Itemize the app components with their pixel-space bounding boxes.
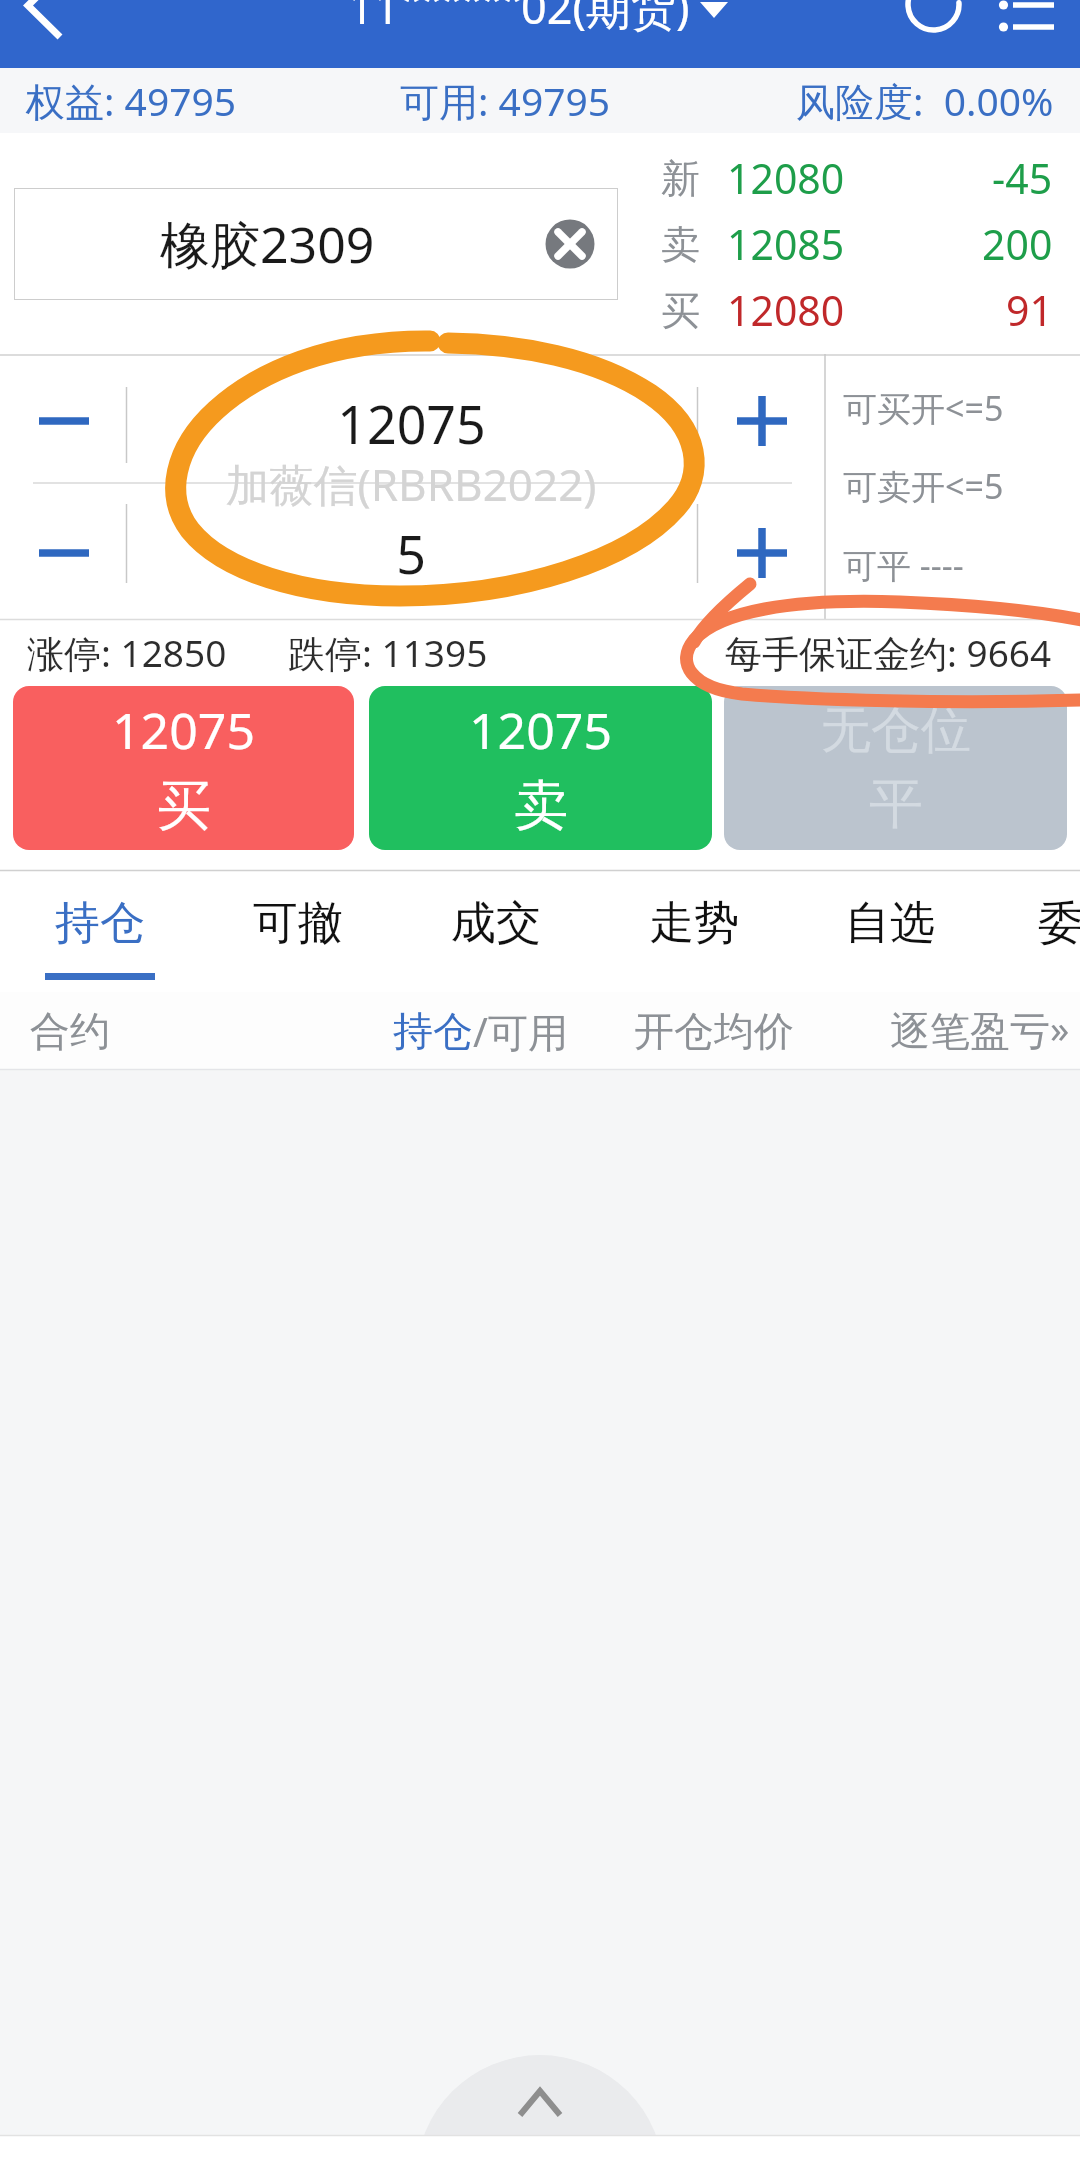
staticText: 12080 (727, 282, 845, 338)
staticText: 11 (348, 0, 400, 37)
staticText: 权益: 49795 (26, 74, 237, 127)
button[interactable]: Increase price (737, 396, 787, 446)
staticText: 橡胶2309 (160, 210, 375, 278)
staticText: 02(期货) (521, 0, 690, 37)
button[interactable]: 12075 (145, 367, 677, 479)
staticText: » (1050, 1002, 1070, 1054)
staticText: 可撤 (253, 895, 343, 952)
staticText: 可平 ---- (843, 542, 964, 586)
staticText: 持仓 (393, 1006, 473, 1056)
button[interactable]: 持仓 (393, 992, 568, 1070)
staticText: 跌停: 11395 (288, 627, 488, 678)
button[interactable]: Refresh (886, 0, 981, 20)
staticText: 卖 (514, 772, 568, 840)
staticText: 12080 (727, 150, 845, 206)
staticText: -45 (992, 150, 1053, 206)
button[interactable]: 可撤 (199, 870, 397, 992)
staticText: 卖 (661, 220, 700, 269)
staticText: 可卖开<=5 (843, 463, 1004, 507)
button[interactable]: 12075 (13, 686, 354, 850)
staticText: 平 (869, 770, 923, 838)
staticText: 买 (661, 286, 700, 335)
button[interactable]: 委 (961, 870, 1080, 992)
button[interactable]: 成交 (397, 870, 595, 992)
button[interactable]: Decrease price (39, 396, 89, 446)
button[interactable]: 合约 (30, 992, 150, 1070)
button[interactable]: 开仓均价 (634, 992, 799, 1070)
button[interactable]: Clear (540, 214, 600, 274)
button[interactable]: Back (0, 0, 100, 34)
staticText: 加薇信(RBRB2022) (225, 454, 597, 514)
staticText: 200 (982, 216, 1053, 272)
button[interactable]: Menu (955, 0, 1065, 20)
staticText: 持仓 (55, 895, 145, 952)
staticText: /可用 (473, 1004, 568, 1059)
staticText: 12085 (727, 216, 845, 272)
staticText: 委 (1038, 895, 1080, 952)
staticText: 开仓均价 (634, 1006, 794, 1056)
button[interactable]: 可买开<=5 (843, 385, 1080, 429)
staticText: 逐笔盈亏 (890, 1006, 1050, 1056)
button[interactable]: 持仓 (1, 870, 199, 992)
button[interactable]: 逐笔盈亏 (890, 992, 1070, 1070)
staticText: 自选 (845, 895, 935, 952)
staticText: 可用: 49795 (400, 74, 611, 127)
button[interactable]: 11 (348, 0, 748, 40)
staticText: 每手保证金约: 9664 (725, 627, 1052, 678)
button[interactable]: Expand panel (416, 2055, 664, 2135)
staticText: 12075 (337, 388, 486, 459)
staticText: 5 (396, 518, 426, 589)
button[interactable]: Decrease quantity (39, 528, 89, 578)
staticText: 买 (157, 772, 211, 840)
staticText: 成交 (451, 895, 541, 952)
button[interactable]: 5 (145, 497, 677, 609)
staticText: 91 (1006, 282, 1053, 338)
button[interactable]: Account dropdown (678, 0, 750, 34)
staticText: 12075 (112, 696, 255, 764)
staticText: 12075 (469, 696, 612, 764)
staticText: 新 (661, 154, 700, 203)
button[interactable]: 走势 (595, 870, 793, 992)
button[interactable]: 可平 ---- (843, 542, 1080, 586)
button[interactable]: 自选 (791, 870, 989, 992)
staticText: 涨停: 12850 (27, 627, 227, 678)
button[interactable]: 可卖开<=5 (843, 463, 1080, 507)
button[interactable]: 无仓位 (724, 686, 1067, 850)
staticText: 走势 (649, 895, 739, 952)
staticText: 无仓位 (821, 699, 971, 762)
staticText: ****** (400, 0, 521, 27)
button[interactable]: Increase quantity (737, 528, 787, 578)
button[interactable]: 12075 (369, 686, 712, 850)
staticText: 可买开<=5 (843, 385, 1004, 429)
staticText: 合约 (30, 1006, 110, 1056)
button[interactable]: 橡胶2309 (14, 188, 618, 300)
staticText: 风险度: 0.00% (796, 74, 1054, 127)
